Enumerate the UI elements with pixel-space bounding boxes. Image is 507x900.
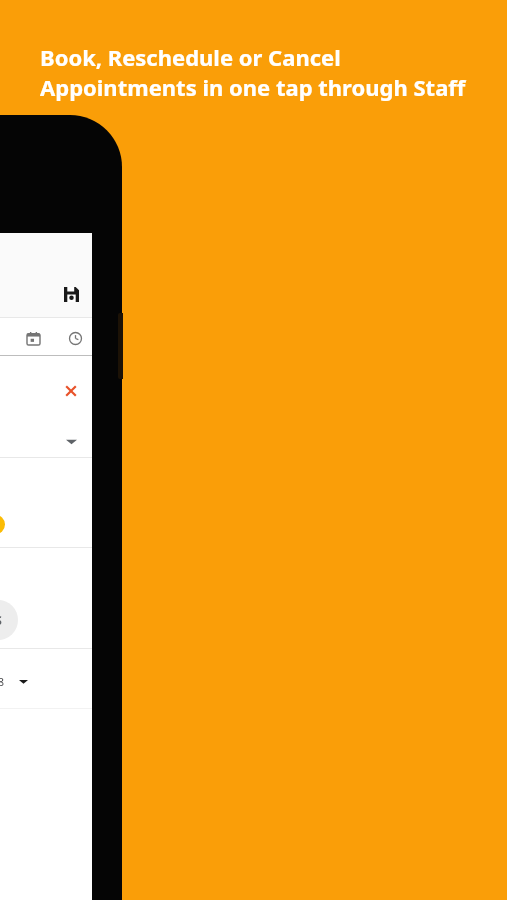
button[interactable]: Toggle — [0, 510, 12, 538]
button[interactable]: Clear — [57, 377, 85, 405]
button[interactable]: Expand dropdown — [57, 427, 85, 455]
staticText: Appointments in one tap through Staff — [40, 72, 466, 102]
staticText: Book, Reschedule or Cancel — [40, 42, 341, 72]
staticText: 358 — [0, 674, 4, 689]
button[interactable]: Save — [57, 280, 85, 308]
button[interactable]: Pick date — [18, 323, 48, 353]
button[interactable]: Decrease — [12, 670, 34, 692]
button[interactable]: S — [0, 600, 18, 640]
staticText: S — [0, 612, 2, 628]
button[interactable]: Pick time — [60, 323, 90, 353]
